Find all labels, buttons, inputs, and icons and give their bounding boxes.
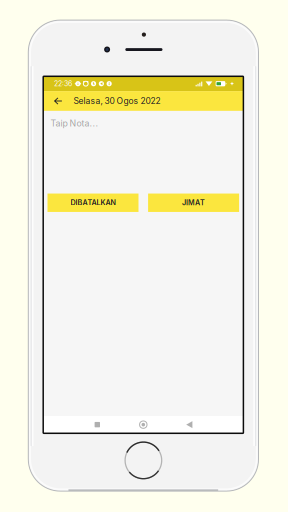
staticText: Selasa, 30 Ogos 2022 (73, 96, 160, 106)
staticText: Taip Nota... (50, 118, 98, 128)
staticText: JIMAT (182, 198, 205, 207)
staticText: 22:36 (54, 79, 72, 88)
button[interactable]: Home (120, 416, 166, 433)
button[interactable]: Recent apps (74, 416, 120, 433)
button[interactable]: DIBATALKAN (47, 193, 138, 212)
button[interactable]: Back (53, 91, 62, 111)
staticText: DIBATALKAN (70, 198, 115, 207)
button[interactable]: JIMAT (148, 193, 239, 212)
button[interactable]: Back (166, 416, 212, 433)
